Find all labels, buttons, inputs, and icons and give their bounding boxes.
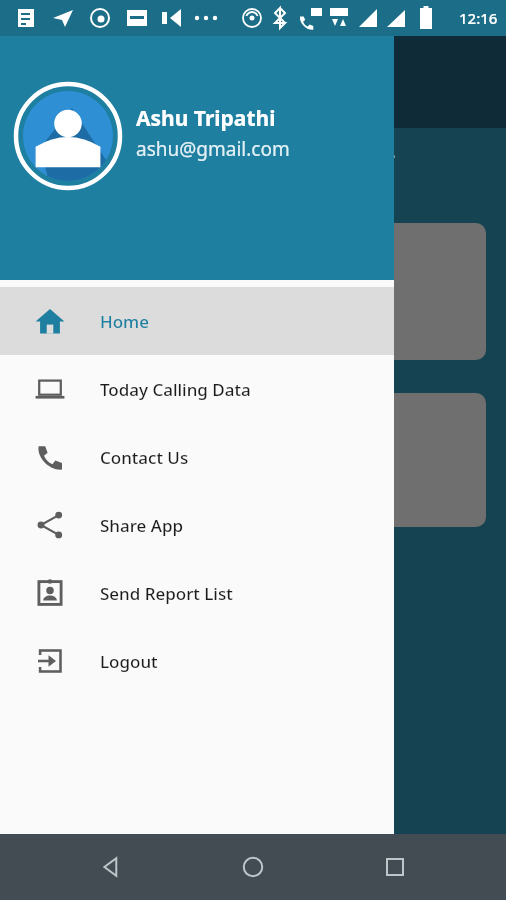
staticText: Send Report List bbox=[100, 582, 233, 605]
button[interactable]: Recent apps bbox=[364, 836, 426, 898]
staticText: Today Calling Data bbox=[100, 378, 251, 401]
staticText: Logout bbox=[100, 650, 158, 673]
staticText: Ashu Tripathi bbox=[136, 104, 276, 133]
staticText: ashu@gmail.com bbox=[136, 136, 290, 162]
button[interactable]: Back bbox=[80, 836, 142, 898]
staticText: 12:16 bbox=[459, 8, 498, 28]
staticText: Share App bbox=[100, 514, 183, 537]
button[interactable]: Home bbox=[222, 836, 284, 898]
button[interactable]: Today Calling Data bbox=[0, 355, 394, 423]
staticText: Home bbox=[100, 310, 149, 333]
button[interactable]: Send Report List bbox=[0, 559, 394, 627]
staticText: main:2 bbox=[300, 126, 397, 167]
button[interactable]: Home bbox=[0, 287, 394, 355]
button[interactable]: Share App bbox=[0, 491, 394, 559]
button[interactable]: Logout bbox=[0, 627, 394, 695]
button[interactable]: Contact Us bbox=[0, 423, 394, 491]
staticText: Contact Us bbox=[100, 446, 189, 469]
